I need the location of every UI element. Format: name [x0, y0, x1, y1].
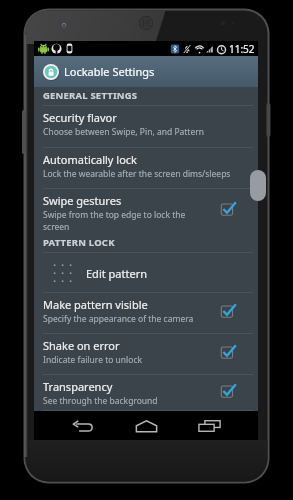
button[interactable]: Shake on error — [34, 334, 258, 375]
staticText: Lockable Settings — [64, 64, 155, 79]
button[interactable]: Back — [52, 411, 112, 440]
button[interactable]: Home — [116, 411, 176, 440]
staticText: Choose between Swipe, Pin, and Pattern — [43, 126, 205, 138]
staticText: GENERAL SETTINGS — [43, 89, 138, 102]
button[interactable]: Recent apps — [179, 411, 239, 440]
button[interactable]: Lockable Settings — [34, 56, 258, 87]
staticText: Automatically lock — [43, 152, 137, 167]
button[interactable]: Automatically lock — [34, 148, 258, 189]
staticText: Swipe from the top edge to lock the — [43, 209, 186, 221]
staticText: Edit pattern — [86, 266, 147, 281]
staticText: Security flavor — [43, 110, 117, 125]
staticText: Make pattern visible — [43, 297, 148, 312]
button[interactable]: Edit pattern — [34, 253, 258, 293]
staticText: Specify the appearance of the camera — [43, 313, 194, 325]
staticText: Indicate failure to unlock — [43, 354, 143, 366]
staticText: 11:52 — [229, 42, 255, 56]
button[interactable]: Security flavor — [34, 106, 258, 148]
staticText: Transparency — [43, 379, 113, 394]
staticText: Lock the wearable after the screen dims/… — [43, 168, 231, 180]
staticText: PATTERN LOCK — [43, 236, 115, 249]
button[interactable]: Make pattern visible — [34, 293, 258, 334]
staticText: screen — [43, 221, 70, 233]
button[interactable]: Transparency — [34, 375, 258, 411]
staticText: Swipe gestures — [43, 193, 122, 208]
staticText: See through the background — [43, 395, 158, 407]
button[interactable]: Swipe gestures — [34, 189, 258, 233]
staticText: Shake on error — [43, 338, 120, 353]
